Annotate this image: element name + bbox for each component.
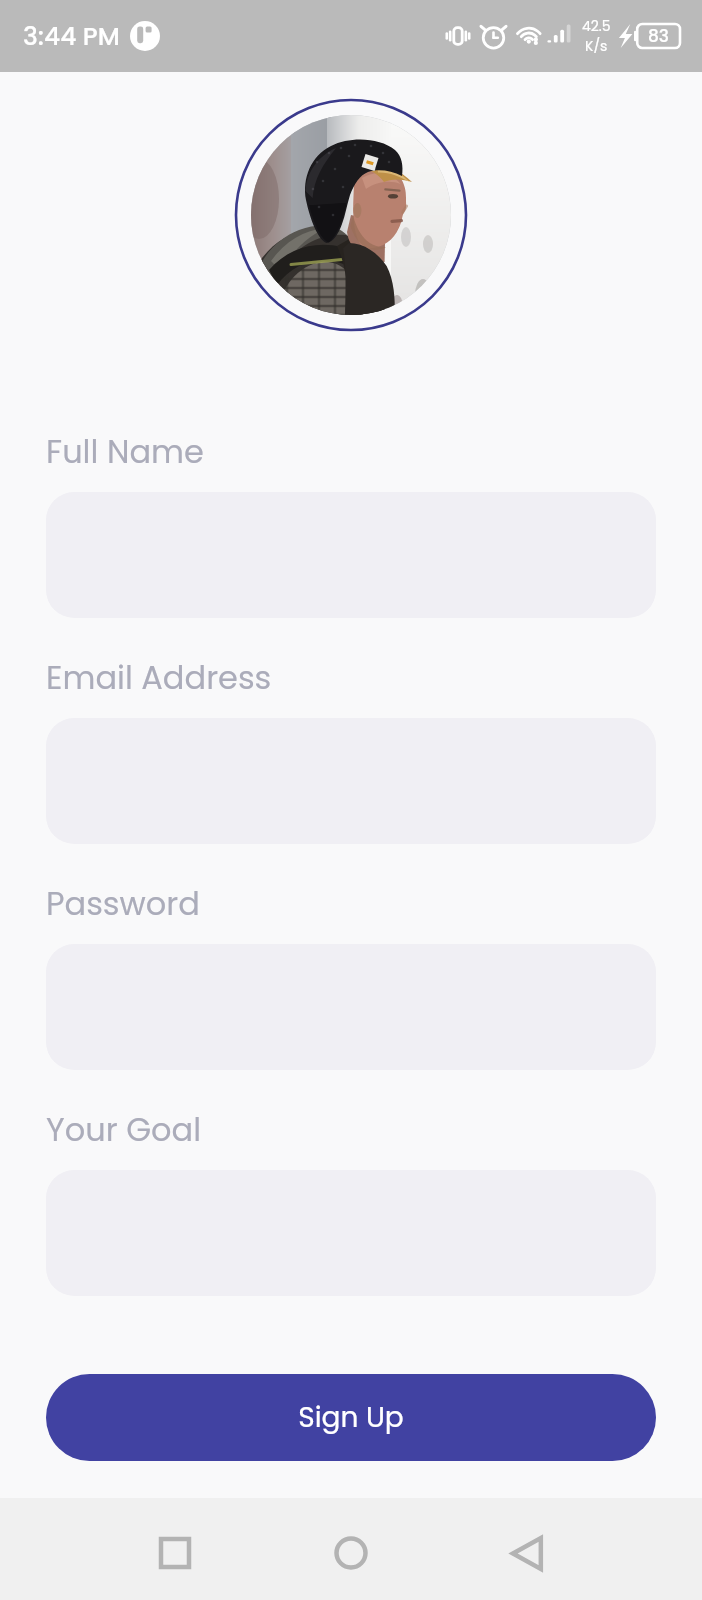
button[interactable]: Recent apps <box>87 1502 263 1600</box>
button[interactable]: Sign Up <box>46 1374 656 1461</box>
button[interactable]: Profile photo <box>235 99 467 331</box>
staticText: Full Name <box>46 429 204 474</box>
staticText: Sign Up <box>298 1398 404 1437</box>
staticText: K/s <box>585 36 608 56</box>
staticText: Email Address <box>46 655 272 700</box>
staticText: Password <box>46 881 200 926</box>
button[interactable]: Home <box>263 1502 439 1600</box>
staticText: Your Goal <box>46 1107 202 1152</box>
staticText: 3:44 PM <box>23 19 120 54</box>
staticText: 83 <box>648 24 669 48</box>
button[interactable]: Back <box>439 1502 615 1600</box>
staticText: 42.5 <box>582 16 611 36</box>
